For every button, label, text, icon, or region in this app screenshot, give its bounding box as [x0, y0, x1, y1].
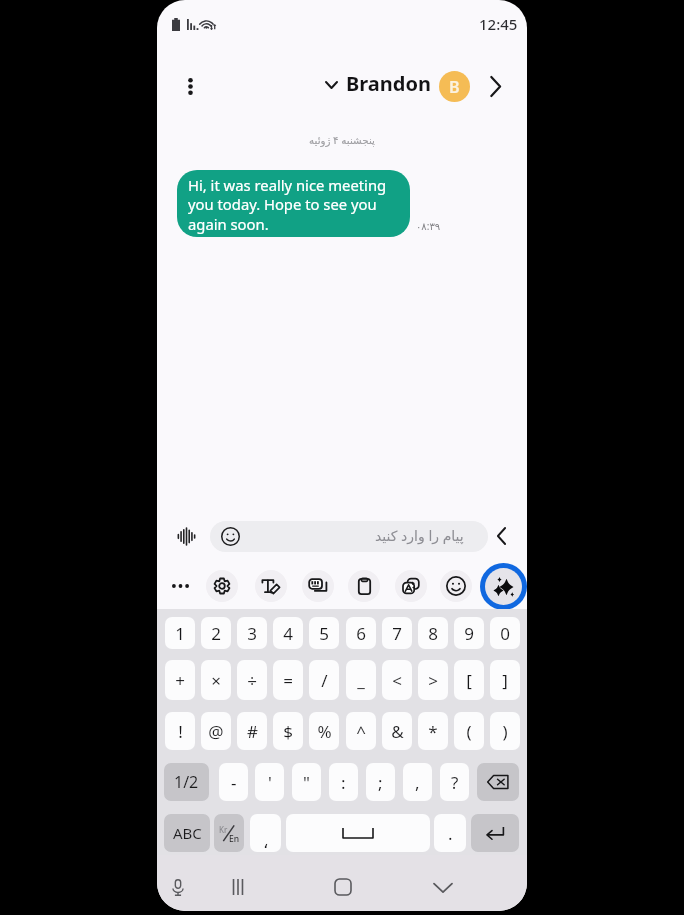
staticText: 6	[356, 622, 366, 645]
button[interactable]: .	[434, 814, 466, 852]
staticText: 4	[283, 622, 293, 645]
staticText: 7	[392, 622, 402, 645]
staticText: 1/2	[174, 771, 199, 793]
button[interactable]: Recent apps	[222, 871, 254, 903]
button[interactable]: ]	[490, 660, 520, 700]
button[interactable]: Home	[327, 871, 359, 903]
button[interactable]: Kr	[214, 814, 244, 852]
button[interactable]: Collapse input	[488, 521, 514, 551]
staticText: $	[283, 720, 293, 743]
button[interactable]: 5	[309, 617, 339, 649]
staticText: پنجشنبه ۴ ژوئیه	[309, 133, 375, 147]
button[interactable]: Hi, it was really nice meeting you today…	[177, 170, 410, 237]
button[interactable]: >	[418, 660, 448, 700]
button[interactable]: ?	[440, 763, 469, 801]
staticText: 0	[500, 622, 510, 645]
button[interactable]: Brandon	[346, 70, 431, 97]
button[interactable]: ^	[346, 712, 376, 750]
button[interactable]: _	[346, 660, 376, 700]
staticText: +	[175, 669, 185, 692]
button[interactable]: More options	[177, 70, 203, 102]
button[interactable]: <	[382, 660, 412, 700]
button[interactable]: Hide keyboard	[427, 871, 459, 903]
staticText: ^	[356, 720, 366, 743]
staticText: %	[317, 720, 332, 743]
button[interactable]: 1	[165, 617, 195, 649]
button[interactable]: ÷	[237, 660, 267, 700]
button[interactable]	[477, 763, 519, 801]
button[interactable]: $	[273, 712, 303, 750]
button[interactable]: Settings	[206, 570, 238, 602]
staticText: ?	[451, 771, 459, 794]
staticText: )	[502, 720, 508, 743]
staticText: @	[208, 720, 224, 743]
button[interactable]: !	[165, 712, 195, 750]
button[interactable]: -	[219, 763, 248, 801]
staticText: -	[231, 771, 237, 794]
staticText: [	[466, 669, 472, 692]
button[interactable]	[319, 71, 343, 99]
button[interactable]: Voice typing	[162, 871, 194, 903]
button[interactable]: #	[237, 712, 267, 750]
button[interactable]: Handwriting	[255, 570, 287, 602]
staticText: #	[247, 720, 258, 743]
button[interactable]: AI writing assistant	[480, 563, 527, 610]
staticText: 12:45	[479, 14, 518, 34]
button[interactable]: %	[309, 712, 339, 750]
button[interactable]: +	[165, 660, 195, 700]
button[interactable]: ،	[250, 814, 281, 852]
staticText: .	[448, 822, 453, 845]
staticText: !	[178, 720, 183, 743]
staticText: <	[392, 669, 402, 692]
staticText: 3	[247, 622, 257, 645]
staticText: >	[428, 669, 438, 692]
staticText: ;	[378, 771, 383, 794]
staticText: =	[283, 669, 293, 692]
staticText: ×	[211, 669, 221, 692]
button[interactable]: '	[255, 763, 284, 801]
button[interactable]: =	[273, 660, 303, 700]
button[interactable]: Translate	[395, 570, 427, 602]
staticText: B	[449, 76, 460, 98]
button[interactable]: )	[490, 712, 520, 750]
button[interactable]: ,	[403, 763, 432, 801]
button[interactable]: Emoji	[440, 570, 472, 602]
staticText: (	[466, 720, 472, 743]
staticText: ,	[415, 771, 420, 794]
staticText: *	[428, 720, 438, 743]
button[interactable]: 2	[201, 617, 231, 649]
button[interactable]: Keyboard layouts	[302, 570, 334, 602]
button[interactable]: *	[418, 712, 448, 750]
button[interactable]: "	[292, 763, 321, 801]
button[interactable]	[471, 814, 519, 852]
button[interactable]: &	[382, 712, 412, 750]
button[interactable]: 1/2	[164, 763, 209, 801]
button[interactable]: /	[309, 660, 339, 700]
button[interactable]: ABC	[164, 814, 210, 852]
staticText: "	[303, 771, 310, 794]
button[interactable]: ×	[201, 660, 231, 700]
button[interactable]: More input options	[164, 570, 196, 602]
button[interactable]	[286, 814, 430, 852]
button[interactable]: :	[329, 763, 358, 801]
button[interactable]: ;	[366, 763, 395, 801]
button[interactable]: Next conversation	[481, 70, 509, 102]
button[interactable]: 0	[490, 617, 520, 649]
button[interactable]: 4	[273, 617, 303, 649]
button[interactable]: 7	[382, 617, 412, 649]
staticText: Kr	[219, 824, 228, 835]
button[interactable]: [	[454, 660, 484, 700]
button[interactable]: 8	[418, 617, 448, 649]
button[interactable]: Voice input	[172, 521, 201, 551]
button[interactable]: B	[439, 71, 470, 102]
staticText: Hi, it was really nice meeting you today…	[188, 175, 404, 235]
staticText: 5	[319, 622, 329, 645]
staticText: 8	[428, 622, 438, 645]
button[interactable]: 3	[237, 617, 267, 649]
button[interactable]: @	[201, 712, 231, 750]
button[interactable]: Clipboard	[348, 570, 380, 602]
button[interactable]: پیام را وارد کنید	[210, 521, 488, 552]
button[interactable]: (	[454, 712, 484, 750]
button[interactable]: 6	[346, 617, 376, 649]
button[interactable]: 9	[454, 617, 484, 649]
